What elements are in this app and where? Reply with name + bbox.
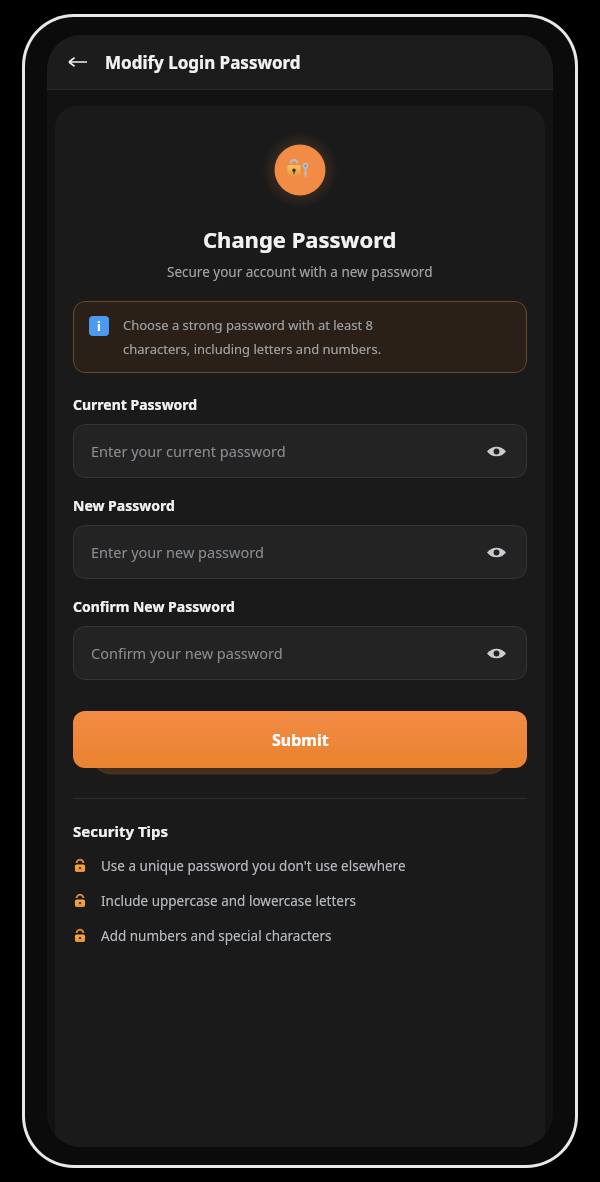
button[interactable]: Submit <box>73 711 527 768</box>
staticText: Secure your account with a new password <box>167 263 433 281</box>
button[interactable]: Back <box>59 43 97 81</box>
staticText: Submit <box>272 729 329 751</box>
staticText: Choose a strong password with at least 8 <box>123 316 373 334</box>
staticText: Enter your new password <box>91 542 264 562</box>
staticText: Change Password <box>203 224 397 254</box>
staticText: Modify Login Password <box>105 51 301 74</box>
staticText: Add numbers and special characters <box>101 927 332 945</box>
button[interactable]: Enter your current password <box>73 424 527 478</box>
staticText: i <box>97 317 101 335</box>
button[interactable]: Show password <box>483 640 509 666</box>
staticText: Confirm your new password <box>91 643 283 663</box>
staticText: Confirm New Password <box>73 597 235 616</box>
staticText: Include uppercase and lowercase letters <box>101 892 356 910</box>
staticText: New Password <box>73 496 175 515</box>
staticText: Current Password <box>73 395 198 414</box>
button[interactable]: Show password <box>483 539 509 565</box>
button[interactable]: Confirm your new password <box>73 626 527 680</box>
staticText: Security Tips <box>73 821 169 841</box>
staticText: characters, including letters and number… <box>123 340 382 358</box>
staticText: Use a unique password you don't use else… <box>101 857 406 875</box>
button[interactable]: Show password <box>483 438 509 464</box>
staticText: Enter your current password <box>91 441 286 461</box>
button[interactable]: Enter your new password <box>73 525 527 579</box>
